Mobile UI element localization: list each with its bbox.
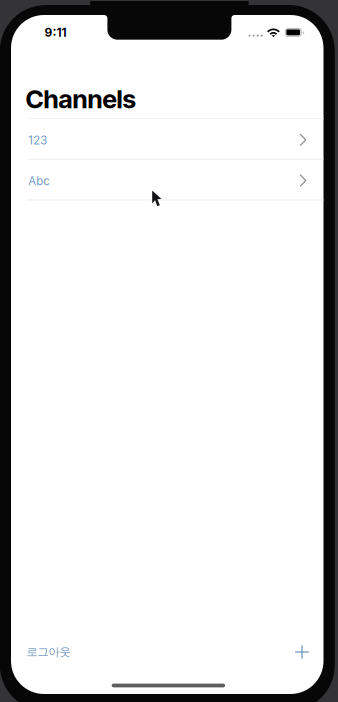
staticText: Channels (25, 84, 135, 114)
staticText: 로그아웃 (26, 645, 70, 659)
staticText: Abc (28, 174, 49, 188)
staticText: 123 (28, 134, 47, 147)
staticText: 9:11 (44, 25, 66, 40)
button[interactable]: 로그아웃 (26, 635, 96, 669)
button[interactable]: 123 (11, 119, 323, 160)
button[interactable]: Add channel (284, 634, 320, 670)
button[interactable]: Abc (11, 160, 323, 200)
